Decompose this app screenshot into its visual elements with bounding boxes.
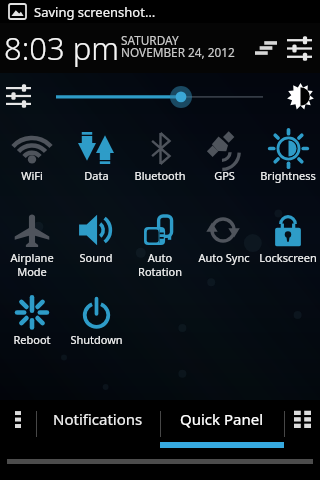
staticText: Auto Rotation	[138, 250, 182, 279]
staticText: Saving screenshot…	[34, 3, 156, 21]
button[interactable]: Brightness settings	[2, 73, 34, 119]
button[interactable]: Settings	[282, 28, 316, 68]
staticText: Airplane Mode	[10, 250, 54, 279]
button[interactable]: Close panel	[0, 450, 320, 472]
staticText: Data	[84, 168, 109, 183]
button[interactable]: Airplane Mode	[0, 201, 64, 283]
button[interactable]: Quick Panel	[160, 400, 284, 437]
button[interactable]: Notifications	[250, 28, 282, 68]
staticText: Sound	[79, 250, 113, 265]
staticText: Quick Panel	[180, 409, 264, 429]
staticText: Notifications	[53, 409, 143, 429]
button[interactable]: Brightness slider	[40, 73, 276, 119]
button[interactable]: Auto brightness	[282, 73, 318, 119]
button[interactable]: WiFi	[0, 119, 64, 201]
staticText: Lockscreen	[259, 250, 317, 265]
button[interactable]: Reboot	[0, 283, 64, 365]
staticText: Auto Sync	[198, 250, 250, 265]
button[interactable]: Auto Rotation	[128, 201, 192, 283]
staticText: WiFi	[21, 168, 43, 183]
button[interactable]: Auto Sync	[192, 201, 256, 283]
button[interactable]: Brightness	[256, 119, 320, 201]
button[interactable]: Notifications	[36, 400, 160, 437]
button[interactable]: Shutdown	[64, 283, 128, 365]
staticText: Brightness	[260, 168, 316, 183]
button[interactable]: Sound	[64, 201, 128, 283]
button[interactable]: Data	[64, 119, 128, 201]
staticText: Reboot	[13, 332, 51, 347]
staticText: Bluetooth	[134, 168, 186, 183]
staticText: GPS	[214, 168, 235, 183]
button[interactable]: More options	[0, 400, 36, 437]
staticText: Shutdown	[70, 332, 123, 347]
button[interactable]: Bluetooth	[128, 119, 192, 201]
button[interactable]: App grid	[284, 400, 320, 437]
staticText: 8:03 pm	[4, 27, 119, 69]
staticText: SATURDAY NOVEMBER 24, 2012	[121, 32, 235, 61]
button[interactable]: Lockscreen	[256, 201, 320, 283]
button[interactable]: GPS	[192, 119, 256, 201]
